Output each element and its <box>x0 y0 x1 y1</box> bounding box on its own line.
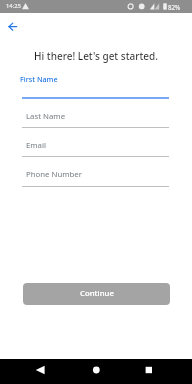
staticText: Email <box>26 140 47 151</box>
staticText: Phone Number <box>26 169 82 180</box>
button[interactable] <box>0 359 64 384</box>
button[interactable]: Continue <box>23 283 170 305</box>
staticText: 14:25 <box>6 2 21 10</box>
staticText: Last Name <box>26 111 66 122</box>
button[interactable] <box>64 359 128 384</box>
staticText: 82% <box>168 3 181 11</box>
button[interactable] <box>128 359 192 384</box>
button[interactable] <box>4 20 20 36</box>
staticText: Hi there! Let's get started. <box>0 49 192 63</box>
staticText: First Name <box>20 74 58 84</box>
staticText: Continue <box>80 288 114 299</box>
